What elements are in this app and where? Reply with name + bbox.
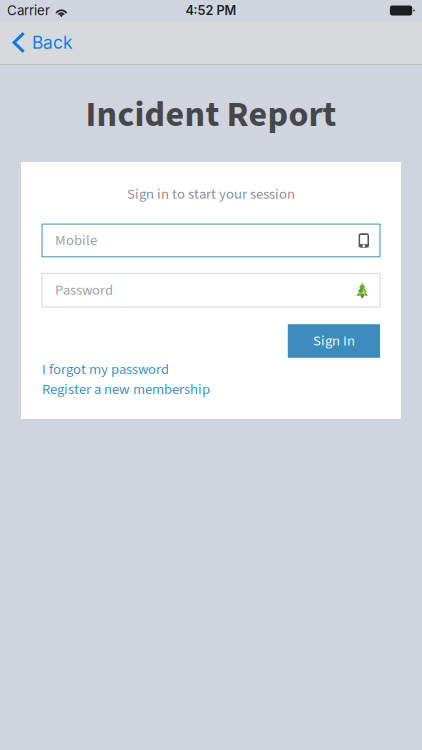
staticText: Password: [55, 280, 113, 301]
button[interactable]: Register a new membership: [42, 379, 380, 399]
staticText: I forgot my password: [42, 359, 169, 380]
staticText: Sign In: [313, 331, 355, 351]
staticText: Incident Report: [85, 89, 336, 140]
button[interactable]: I forgot my password: [42, 359, 380, 379]
staticText: Sign in to start your session: [127, 184, 295, 205]
staticText: Register a new membership: [42, 379, 210, 400]
staticText: Mobile: [55, 230, 97, 251]
button[interactable]: Sign In: [288, 324, 380, 358]
staticText: Carrier: [7, 2, 50, 18]
button[interactable]: Back: [0, 21, 87, 64]
staticText: 4:52 PM: [185, 3, 236, 18]
staticText: Back: [32, 32, 73, 53]
